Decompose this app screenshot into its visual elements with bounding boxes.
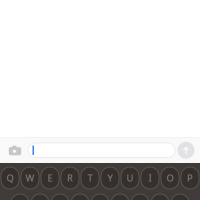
button[interactable]: Q [1, 167, 19, 189]
staticText: T [87, 172, 92, 184]
staticText: P [187, 172, 193, 184]
button[interactable]: U [121, 167, 139, 189]
button[interactable]: E [41, 167, 59, 189]
staticText: U [126, 172, 133, 184]
button[interactable]: Send [176, 138, 196, 163]
button[interactable]: Y [101, 167, 119, 189]
button[interactable]: D [51, 194, 69, 200]
button[interactable]: R [61, 167, 79, 189]
button[interactable]: H [111, 194, 129, 200]
staticText: Y [107, 172, 112, 184]
button[interactable]: G [91, 194, 109, 200]
button[interactable]: W [21, 167, 39, 189]
staticText: R [67, 172, 73, 184]
staticText: E [47, 172, 52, 184]
button[interactable]: S [31, 194, 49, 200]
button[interactable]: L [171, 194, 189, 200]
staticText: Q [6, 172, 13, 184]
button[interactable]: J [131, 194, 149, 200]
button[interactable]: O [161, 167, 179, 189]
button[interactable]: F [71, 194, 89, 200]
button[interactable]: A [11, 194, 29, 200]
button[interactable]: T [81, 167, 99, 189]
button[interactable]: Camera [2, 138, 28, 163]
staticText: W [25, 172, 34, 184]
button[interactable]: P [181, 167, 199, 189]
staticText: O [166, 172, 173, 184]
button[interactable]: K [151, 194, 169, 200]
button[interactable]: I [141, 167, 159, 189]
staticText: I [148, 172, 151, 184]
